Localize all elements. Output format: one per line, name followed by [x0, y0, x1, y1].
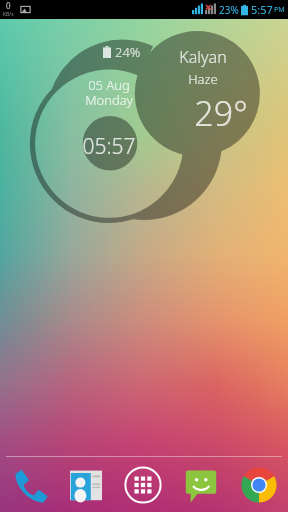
other: Messaging: [181, 465, 221, 505]
other: All apps: [123, 465, 163, 505]
button[interactable]: All apps: [123, 465, 163, 505]
button[interactable]: Chrome: [239, 465, 279, 505]
staticText: Haze: [139, 70, 267, 88]
button[interactable]: Phone: [9, 465, 49, 505]
button[interactable]: Messaging: [181, 465, 221, 505]
staticText: PM: [274, 5, 285, 15]
button[interactable]: 05 Aug: [0, 0, 288, 512]
staticText: 0: [6, 0, 11, 11]
staticText: 24%: [115, 43, 141, 61]
staticText: 23%: [219, 3, 239, 17]
staticText: 05 Aug: [45, 76, 173, 94]
staticText: Kalyan: [139, 46, 267, 68]
other: Contacts: [66, 465, 106, 505]
staticText: Monday: [45, 91, 173, 109]
staticText: 29°: [157, 90, 285, 136]
staticText: 05:57: [45, 132, 173, 161]
other: Phone: [9, 465, 49, 505]
staticText: KB/s: [3, 11, 14, 18]
button[interactable]: Contacts: [66, 465, 106, 505]
other: Chrome: [239, 465, 279, 505]
staticText: 5:57: [251, 2, 273, 17]
